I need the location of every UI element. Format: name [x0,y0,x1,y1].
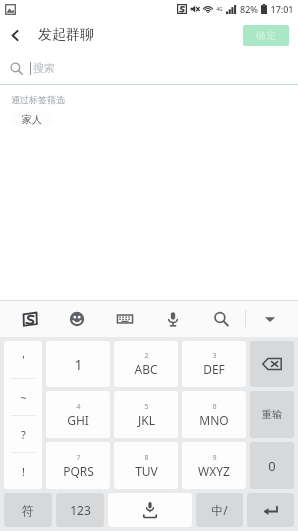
button[interactable]: 0 [250,442,294,489]
staticText: 8 [144,453,149,463]
button[interactable]: 家人 [11,111,53,128]
button[interactable]: Sogou input method [6,300,53,337]
button[interactable]: 中/ [196,493,243,527]
staticText: ! [22,464,25,479]
staticText: 9 [212,453,217,463]
staticText: JKL [138,412,155,428]
button[interactable]: Voice input [149,300,197,337]
staticText: 123 [70,502,91,518]
button[interactable]: 搜索 [10,52,298,84]
button[interactable]: 123 [56,493,104,527]
button[interactable]: 9 [182,442,246,489]
staticText: 符 [22,503,34,518]
staticText: 3 [212,351,217,361]
button[interactable]: Emoji [53,300,101,337]
staticText: 0 [268,457,276,475]
button[interactable]: 8 [114,442,178,489]
button[interactable]: 重输 [250,391,294,438]
staticText: 2 [144,351,149,361]
staticText: 中/ [211,502,228,518]
staticText: WXYZ [198,463,230,479]
button[interactable]: 2 [114,341,178,387]
button[interactable]: ' [4,341,42,378]
button[interactable]: 5 [114,391,178,438]
staticText: 1 [74,355,83,374]
button[interactable]: ? [4,416,42,452]
button[interactable]: Search [197,300,245,337]
staticText: ABC [134,361,158,377]
staticText: 82% [240,3,258,15]
staticText: PQRS [63,463,94,479]
button[interactable]: ~ [4,379,42,415]
staticText: DEF [203,361,225,377]
staticText: 确定 [256,29,276,42]
button[interactable]: Backspace [250,341,294,387]
button[interactable]: 4 [46,391,110,438]
button[interactable]: Enter [247,493,294,527]
staticText: TUV [135,463,158,479]
staticText: GHI [67,412,89,428]
staticText: 家人 [22,113,42,126]
button[interactable]: ! [4,453,42,489]
button[interactable]: 6 [182,391,246,438]
staticText: 17:01 [270,3,294,15]
staticText: ' [22,352,25,367]
staticText: 发起群聊 [38,26,94,44]
button[interactable]: Voice input and space [108,493,192,527]
staticText: 搜索 [33,61,55,75]
staticText: 6 [212,402,217,412]
staticText: 7 [76,453,81,463]
staticText: 5 [144,402,149,412]
staticText: 重输 [262,408,282,421]
button[interactable]: Back [0,20,30,50]
staticText: 通过标签筛选 [11,94,65,105]
button[interactable]: Hide keyboard [246,300,294,337]
button[interactable]: Keyboard layout [101,300,149,337]
button[interactable]: 3 [182,341,246,387]
staticText: ~ [20,390,27,405]
staticText: 4G [216,6,223,13]
button[interactable]: 符 [4,493,52,527]
button[interactable]: 确定 [243,25,289,46]
staticText: MNO [199,412,229,428]
staticText: 4 [76,402,81,412]
button[interactable]: 1 [46,341,110,387]
staticText: ? [21,427,26,442]
button[interactable]: 7 [46,442,110,489]
